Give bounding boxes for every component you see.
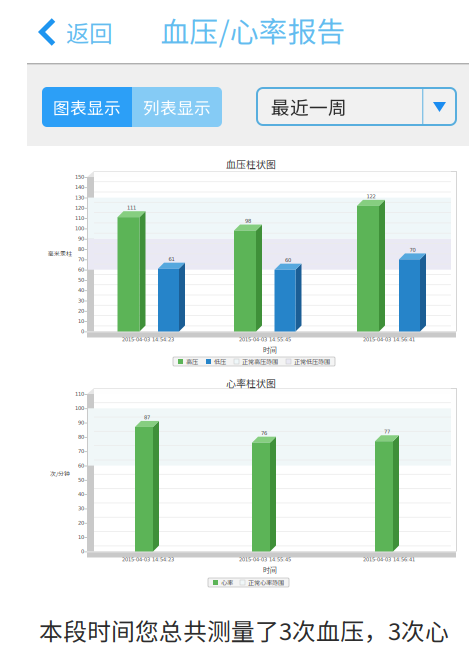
staticText: 本段时间您总共测量了3次血压，3次心 bbox=[39, 613, 449, 647]
staticText: 0 bbox=[81, 548, 84, 555]
staticText: 87 bbox=[144, 414, 150, 420]
staticText: 心率柱状图 bbox=[226, 376, 276, 390]
staticText: 130 bbox=[75, 195, 84, 201]
staticText: 10 bbox=[78, 534, 84, 540]
staticText: 2015-04-03 14:54:23 bbox=[122, 337, 174, 342]
staticText: 正常心率范围 bbox=[248, 578, 284, 587]
staticText: 120 bbox=[75, 205, 84, 211]
button[interactable]: 返回 bbox=[38, 9, 123, 55]
staticText: 列表显示 bbox=[143, 95, 211, 119]
staticText: 50 bbox=[78, 277, 84, 283]
staticText: 40 bbox=[78, 287, 84, 293]
staticText: 90 bbox=[78, 420, 84, 426]
staticText: 最近一周 bbox=[271, 93, 347, 120]
staticText: 0 bbox=[81, 328, 84, 335]
staticText: 30 bbox=[78, 298, 84, 304]
staticText: 10 bbox=[78, 318, 84, 324]
staticText: 血压柱状图 bbox=[226, 157, 276, 171]
staticText: 110 bbox=[75, 215, 84, 221]
staticText: 60 bbox=[78, 267, 84, 273]
staticText: 98 bbox=[245, 218, 251, 224]
staticText: 图表显示 bbox=[53, 95, 121, 119]
staticText: 2015-04-03 14:55:45 bbox=[239, 337, 291, 342]
staticText: 100 bbox=[75, 405, 84, 411]
staticText: 血压/心率报告 bbox=[160, 9, 345, 51]
staticText: 2015-04-03 14:55:45 bbox=[239, 557, 291, 562]
staticText: 返回 bbox=[66, 15, 112, 49]
staticText: 100 bbox=[75, 225, 84, 232]
staticText: 20 bbox=[78, 308, 84, 314]
staticText: 80 bbox=[78, 434, 84, 440]
staticText: 毫米汞柱 bbox=[48, 249, 72, 258]
staticText: 30 bbox=[78, 505, 84, 512]
staticText: 50 bbox=[78, 477, 84, 483]
staticText: 122 bbox=[366, 193, 375, 199]
staticText: 次/分钟 bbox=[50, 469, 70, 478]
staticText: 150 bbox=[75, 174, 84, 180]
staticText: 70 bbox=[409, 247, 415, 253]
staticText: 80 bbox=[78, 246, 84, 252]
staticText: 111 bbox=[127, 205, 136, 211]
staticText: 77 bbox=[384, 429, 390, 435]
button[interactable]: 列表显示 bbox=[132, 87, 222, 127]
staticText: 90 bbox=[78, 236, 84, 242]
staticText: 正常高压范围 bbox=[242, 357, 278, 366]
button[interactable]: 图表显示 bbox=[42, 87, 132, 127]
staticText: 70 bbox=[78, 448, 84, 454]
staticText: 2015-04-03 14:56:41 bbox=[363, 337, 415, 342]
button[interactable]: 最近一周 bbox=[257, 88, 456, 125]
staticText: 低压 bbox=[214, 357, 226, 366]
button[interactable]: 血压/心率报告 bbox=[153, 7, 353, 53]
staticText: 140 bbox=[75, 184, 84, 190]
staticText: 110 bbox=[75, 391, 84, 397]
staticText: 40 bbox=[78, 491, 84, 497]
staticText: 正常低压范围 bbox=[294, 357, 330, 366]
staticText: 60 bbox=[285, 257, 291, 263]
staticText: 心率 bbox=[221, 578, 233, 587]
staticText: 76 bbox=[261, 430, 267, 436]
staticText: 20 bbox=[78, 520, 84, 526]
staticText: 2015-04-03 14:54:23 bbox=[122, 557, 174, 562]
staticText: 60 bbox=[78, 463, 84, 469]
staticText: 高压 bbox=[186, 357, 198, 366]
staticText: 时间 bbox=[263, 344, 277, 355]
staticText: 61 bbox=[168, 256, 174, 262]
staticText: 时间 bbox=[263, 564, 277, 575]
staticText: 70 bbox=[78, 256, 84, 262]
staticText: 2015-04-03 14:56:41 bbox=[363, 557, 415, 562]
